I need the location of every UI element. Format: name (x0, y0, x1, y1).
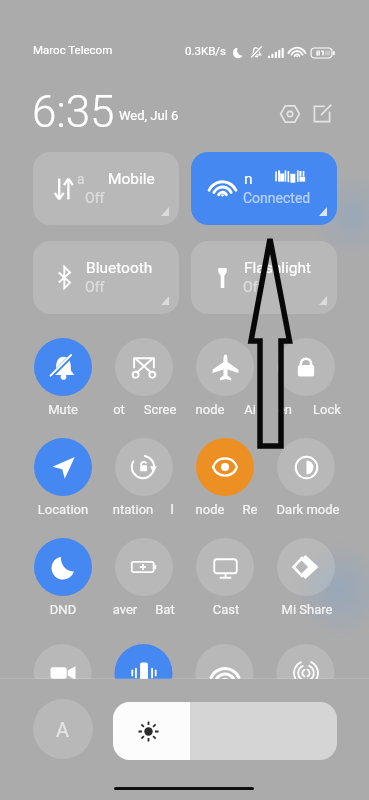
button[interactable]: Battery saver (115, 538, 173, 596)
staticText: Dark mode (268, 502, 348, 517)
button[interactable]: Do not disturb (34, 538, 92, 596)
staticText: Off (243, 279, 263, 295)
staticText: Bat (125, 602, 205, 617)
button[interactable]: Mute (34, 338, 92, 396)
staticText: 0.3KB/s (185, 44, 227, 57)
button[interactable]: Location (34, 438, 92, 496)
button[interactable]: Screen recorder (50, 660, 76, 679)
staticText: Re (210, 502, 290, 517)
staticText: ot (79, 402, 159, 417)
button[interactable]: Screenshot (115, 338, 173, 396)
staticText: Mobile (108, 170, 155, 188)
staticText: Flashlight (244, 259, 312, 277)
staticText: A (56, 718, 70, 741)
staticText: Lock (287, 402, 367, 417)
staticText: Ai (210, 402, 290, 417)
staticText: Off (85, 190, 105, 206)
button[interactable]: NFC (293, 660, 319, 679)
staticText: node (170, 402, 250, 417)
button[interactable]: Vibrate (131, 660, 157, 679)
button[interactable]: Mobile data (33, 152, 179, 225)
button[interactable]: Dark mode (277, 438, 335, 496)
staticText: Wed, Jul 6 (119, 108, 179, 123)
staticText: Mi Share (267, 602, 347, 617)
staticText: a (77, 171, 85, 187)
staticText: Scree (120, 402, 200, 417)
staticText: DND (23, 602, 103, 617)
staticText: Cast (186, 602, 266, 617)
staticText: Mute (23, 402, 103, 417)
button[interactable]: Flashlight (191, 241, 337, 314)
button[interactable]: Wi-Fi (191, 152, 337, 225)
staticText: n (244, 170, 253, 188)
staticText: l (132, 502, 212, 517)
staticText: Connected (243, 190, 311, 206)
staticText: Maroc Telecom (33, 43, 113, 56)
button[interactable]: Cast (196, 538, 254, 596)
staticText: Off (85, 279, 105, 295)
button[interactable]: Settings (276, 100, 304, 128)
button[interactable]: Lock screen (277, 338, 335, 396)
button[interactable]: Auto brightness (33, 699, 93, 759)
button[interactable]: Wi-Fi hotspot (212, 660, 238, 679)
staticText: 6:35 (32, 86, 115, 138)
staticText: Location (23, 502, 103, 517)
staticText: ntation (93, 502, 173, 517)
button[interactable]: Mi Share (277, 538, 335, 596)
button[interactable]: Airplane mode (196, 338, 254, 396)
staticText: aver (85, 602, 165, 617)
button[interactable]: Brightness (113, 702, 337, 760)
staticText: node (170, 502, 250, 517)
button[interactable]: Reading mode (196, 438, 254, 496)
staticText: Bluetooth (86, 259, 153, 277)
button[interactable]: Auto-rotate (115, 438, 173, 496)
button[interactable]: Bluetooth (33, 241, 179, 314)
staticText: en (245, 402, 325, 417)
button[interactable]: Edit quick settings (308, 100, 336, 128)
